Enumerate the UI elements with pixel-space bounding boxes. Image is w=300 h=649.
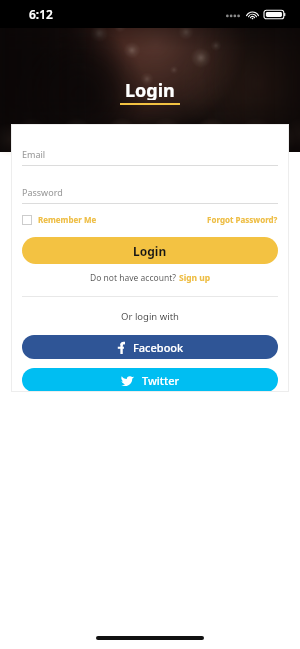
button[interactable]: Remember Me <box>22 214 97 225</box>
staticText: Password <box>22 186 63 198</box>
staticText: Login <box>133 243 167 259</box>
staticText: Remember Me <box>38 214 97 225</box>
other: Twitter <box>121 375 134 386</box>
staticText: Sign up <box>179 272 211 284</box>
button[interactable]: Facebook <box>22 335 278 359</box>
staticText: Twitter <box>142 373 180 388</box>
other: Facebook <box>117 341 125 354</box>
staticText: Login <box>125 78 175 100</box>
button[interactable]: Login <box>22 237 278 264</box>
staticText: Forgot Password? <box>207 214 278 225</box>
staticText: 6:12 <box>29 6 53 22</box>
staticText: Facebook <box>133 340 184 355</box>
button[interactable]: Twitter <box>22 368 278 392</box>
button[interactable]: Sign up <box>179 272 211 284</box>
button[interactable]: Password <box>22 186 278 204</box>
staticText: Or login with <box>22 310 278 323</box>
button[interactable]: Email <box>22 148 278 166</box>
staticText: Do not have account? <box>90 272 179 284</box>
staticText: Email <box>22 148 46 160</box>
button[interactable]: Forgot Password? <box>207 214 278 225</box>
